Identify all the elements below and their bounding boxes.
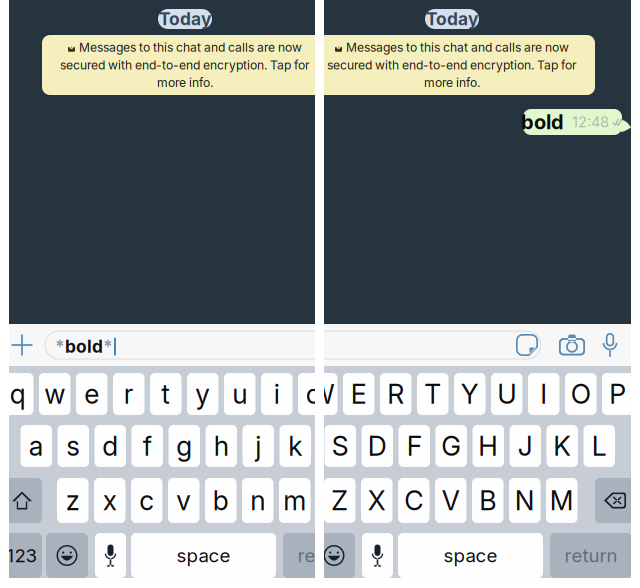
button[interactable]: q	[2, 373, 33, 415]
button[interactable]: U	[491, 373, 522, 415]
button[interactable]: a	[20, 425, 52, 467]
button[interactable]: o	[298, 373, 329, 415]
button[interactable]: Q	[269, 373, 300, 415]
button[interactable]: Stickers	[512, 331, 542, 359]
button[interactable]: B	[472, 478, 503, 523]
staticText: d	[102, 430, 118, 462]
staticText: 12:48	[572, 113, 609, 131]
button[interactable]: Y	[454, 373, 485, 415]
button[interactable]: s	[57, 425, 89, 467]
button[interactable]: p	[335, 373, 366, 415]
button[interactable]: Dictate	[95, 533, 126, 578]
button[interactable]: L	[583, 425, 615, 467]
button[interactable]: W	[306, 373, 337, 415]
button[interactable]: Attach	[272, 324, 306, 366]
button[interactable]: k	[279, 425, 311, 467]
button[interactable]: Camera	[554, 324, 590, 366]
staticText: I	[540, 378, 547, 410]
button[interactable]: Voice message	[594, 324, 626, 366]
button[interactable]: K	[546, 425, 578, 467]
button[interactable]: G	[435, 425, 467, 467]
staticText: R	[387, 378, 404, 410]
staticText: Today	[426, 8, 478, 29]
staticText: i	[274, 378, 280, 410]
button[interactable]: I	[528, 373, 559, 415]
button[interactable]: A	[287, 425, 319, 467]
button[interactable]: space	[398, 533, 543, 578]
button[interactable]: 123	[269, 533, 309, 578]
staticText: j	[255, 430, 261, 462]
button[interactable]: z	[57, 478, 88, 523]
button[interactable]: R	[380, 373, 411, 415]
button[interactable]: D	[361, 425, 393, 467]
button[interactable]: E	[343, 373, 374, 415]
button[interactable]: 123	[2, 533, 42, 578]
staticText: W	[309, 378, 335, 410]
button[interactable]: H	[472, 425, 504, 467]
button[interactable]: w	[39, 373, 70, 415]
button[interactable]: Emoji	[46, 533, 88, 578]
button[interactable]: Shift	[2, 478, 42, 523]
button[interactable]: J	[509, 425, 541, 467]
button[interactable]: Attach	[5, 324, 39, 366]
button[interactable]: Delete	[328, 478, 368, 523]
staticText: S	[332, 430, 349, 462]
button[interactable]: r	[113, 373, 144, 415]
staticText: M	[550, 484, 574, 517]
staticText: c	[139, 484, 154, 517]
staticText: secured with end-to-end encryption. Tap …	[327, 58, 577, 72]
button[interactable]: b	[205, 478, 236, 523]
button[interactable]: c	[131, 478, 162, 523]
button[interactable]: n	[242, 478, 273, 523]
button[interactable]: space	[131, 533, 276, 578]
staticText: a	[29, 430, 44, 462]
staticText: D	[368, 430, 387, 462]
staticText: T	[424, 378, 441, 410]
staticText: bold	[65, 336, 103, 357]
staticText: L	[592, 430, 607, 462]
button[interactable]: t	[150, 373, 181, 415]
button[interactable]: x	[94, 478, 125, 523]
button[interactable]: h	[205, 425, 237, 467]
button[interactable]: u	[224, 373, 255, 415]
button[interactable]: M	[546, 478, 577, 523]
button[interactable]: X	[361, 478, 392, 523]
button[interactable]: Dictate	[362, 533, 393, 578]
button[interactable]: y	[187, 373, 218, 415]
button[interactable]: S	[324, 425, 356, 467]
button[interactable]: Shift	[269, 478, 309, 523]
button[interactable]: j	[242, 425, 274, 467]
button[interactable]: g	[168, 425, 200, 467]
staticText: G	[441, 430, 461, 462]
button[interactable]: Z	[324, 478, 355, 523]
button[interactable]: v	[168, 478, 199, 523]
button[interactable]: O	[565, 373, 596, 415]
button[interactable]: return	[283, 533, 365, 578]
staticText: *	[103, 336, 113, 357]
staticText: e	[84, 378, 99, 410]
staticText: l	[329, 430, 335, 462]
button[interactable]: T	[417, 373, 448, 415]
button[interactable]: e	[76, 373, 107, 415]
button[interactable]: f	[131, 425, 163, 467]
button[interactable]: F	[398, 425, 430, 467]
staticText: g	[176, 430, 192, 462]
button[interactable]: i	[261, 373, 292, 415]
staticText: N	[515, 484, 535, 517]
staticText: p	[343, 378, 359, 410]
button[interactable]: C	[398, 478, 429, 523]
staticText: 123	[6, 544, 37, 567]
button[interactable]: Delete	[595, 478, 635, 523]
button[interactable]: N	[509, 478, 540, 523]
staticText: J	[518, 430, 533, 462]
staticText: k	[288, 430, 302, 462]
button[interactable]: d	[94, 425, 126, 467]
staticText: v	[176, 484, 191, 517]
button[interactable]: return	[550, 533, 632, 578]
staticText: more info.	[424, 75, 480, 90]
button[interactable]: Emoji	[313, 533, 355, 578]
button[interactable]: m	[279, 478, 310, 523]
button[interactable]: V	[435, 478, 466, 523]
button[interactable]: P	[602, 373, 633, 415]
button[interactable]: l	[316, 425, 348, 467]
